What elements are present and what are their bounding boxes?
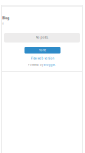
- staticText: No posts.: [35, 35, 48, 39]
- button[interactable]: Home: [24, 47, 60, 53]
- staticText: a: [2, 22, 3, 25]
- staticText: View web version: [30, 57, 54, 60]
- button[interactable]: View web version: [27, 56, 57, 60]
- staticText: Powered by: [28, 63, 43, 66]
- button[interactable]: Blogger.: [44, 63, 56, 66]
- staticText: Home: [38, 48, 46, 52]
- staticText: Blogger.: [44, 63, 56, 66]
- staticText: Blog: [2, 16, 9, 20]
